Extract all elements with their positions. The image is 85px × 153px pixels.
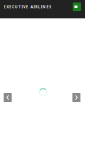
button[interactable]: Menu <box>73 2 81 11</box>
staticText: EXECUTIVE AIRLINES <box>4 4 51 9</box>
button[interactable]: Next <box>72 93 80 102</box>
button[interactable]: Previous <box>4 93 12 102</box>
